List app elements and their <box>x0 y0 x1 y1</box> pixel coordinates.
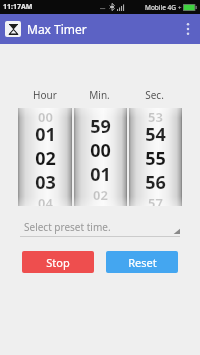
staticText: 01 <box>35 122 56 146</box>
staticText: Max Timer <box>27 21 87 37</box>
staticText: 11:17AM <box>3 2 33 12</box>
button[interactable]: Select preset time. <box>20 220 180 237</box>
button[interactable]: 53 <box>129 108 182 206</box>
staticText: Hour <box>33 88 57 102</box>
button[interactable]: Max Timer <box>5 21 21 37</box>
staticText: 55 <box>145 146 166 170</box>
staticText: 53 <box>148 108 163 122</box>
staticText: 57 <box>148 194 163 206</box>
staticText: Reset <box>128 255 157 270</box>
staticText: 00 <box>90 138 111 162</box>
button[interactable]: Reset <box>106 251 178 273</box>
staticText: 03 <box>35 170 56 194</box>
staticText: Min. <box>89 88 110 102</box>
staticText: Mobile 4G <box>145 3 176 12</box>
staticText: 02 <box>93 186 108 200</box>
staticText: 54 <box>145 122 166 146</box>
button[interactable]: Stop <box>22 251 94 273</box>
staticText: 59 <box>90 114 111 138</box>
staticText: Sec. <box>145 88 164 102</box>
staticText: 02 <box>35 146 56 170</box>
button[interactable]: 00 <box>18 108 72 206</box>
button[interactable]: 59 <box>74 108 127 206</box>
staticText: 56 <box>145 170 166 194</box>
staticText: 00 <box>38 108 53 122</box>
staticText: + <box>178 4 182 12</box>
button[interactable]: More options <box>176 14 200 44</box>
staticText: Select preset time. <box>24 220 173 234</box>
staticText: 01 <box>90 162 111 186</box>
staticText: Stop <box>46 255 70 270</box>
staticText: 04 <box>38 194 53 206</box>
